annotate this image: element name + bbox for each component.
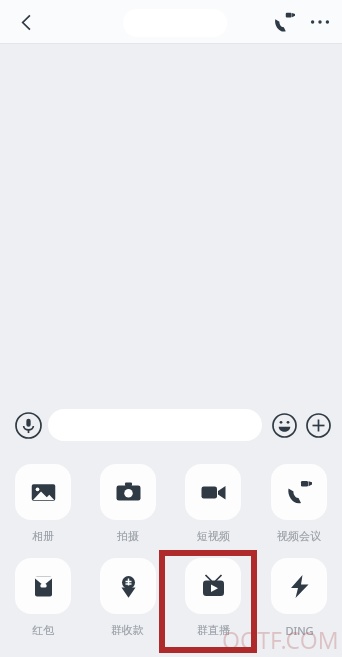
button[interactable] [48,409,262,441]
button[interactable]: More actions [305,412,331,438]
button[interactable]: Emoji [271,412,297,438]
button[interactable]: 拍摄 [85,464,170,543]
staticText: 短视频 [197,529,230,543]
staticText: 群收款 [111,623,144,637]
staticText: 相册 [32,529,54,543]
staticText: 视频会议 [277,529,321,543]
staticText: 拍摄 [117,529,139,543]
button[interactable]: DING [256,558,342,638]
button[interactable]: 相册 [0,464,85,543]
staticText: QQTF.COM [222,624,339,655]
button[interactable]: 视频会议 [256,464,342,543]
staticText: 群直播 [197,623,230,637]
button[interactable]: More options [302,4,338,40]
button[interactable]: 短视频 [170,464,256,543]
button[interactable]: 群收款 [85,558,170,637]
staticText: DING [285,623,314,638]
button[interactable]: Back [8,4,44,40]
button[interactable]: Video call [266,4,302,40]
button[interactable]: 红包 [0,558,85,637]
staticText: 红包 [32,623,54,637]
button[interactable]: Voice input [14,411,42,439]
button[interactable]: 群直播 [170,558,256,637]
